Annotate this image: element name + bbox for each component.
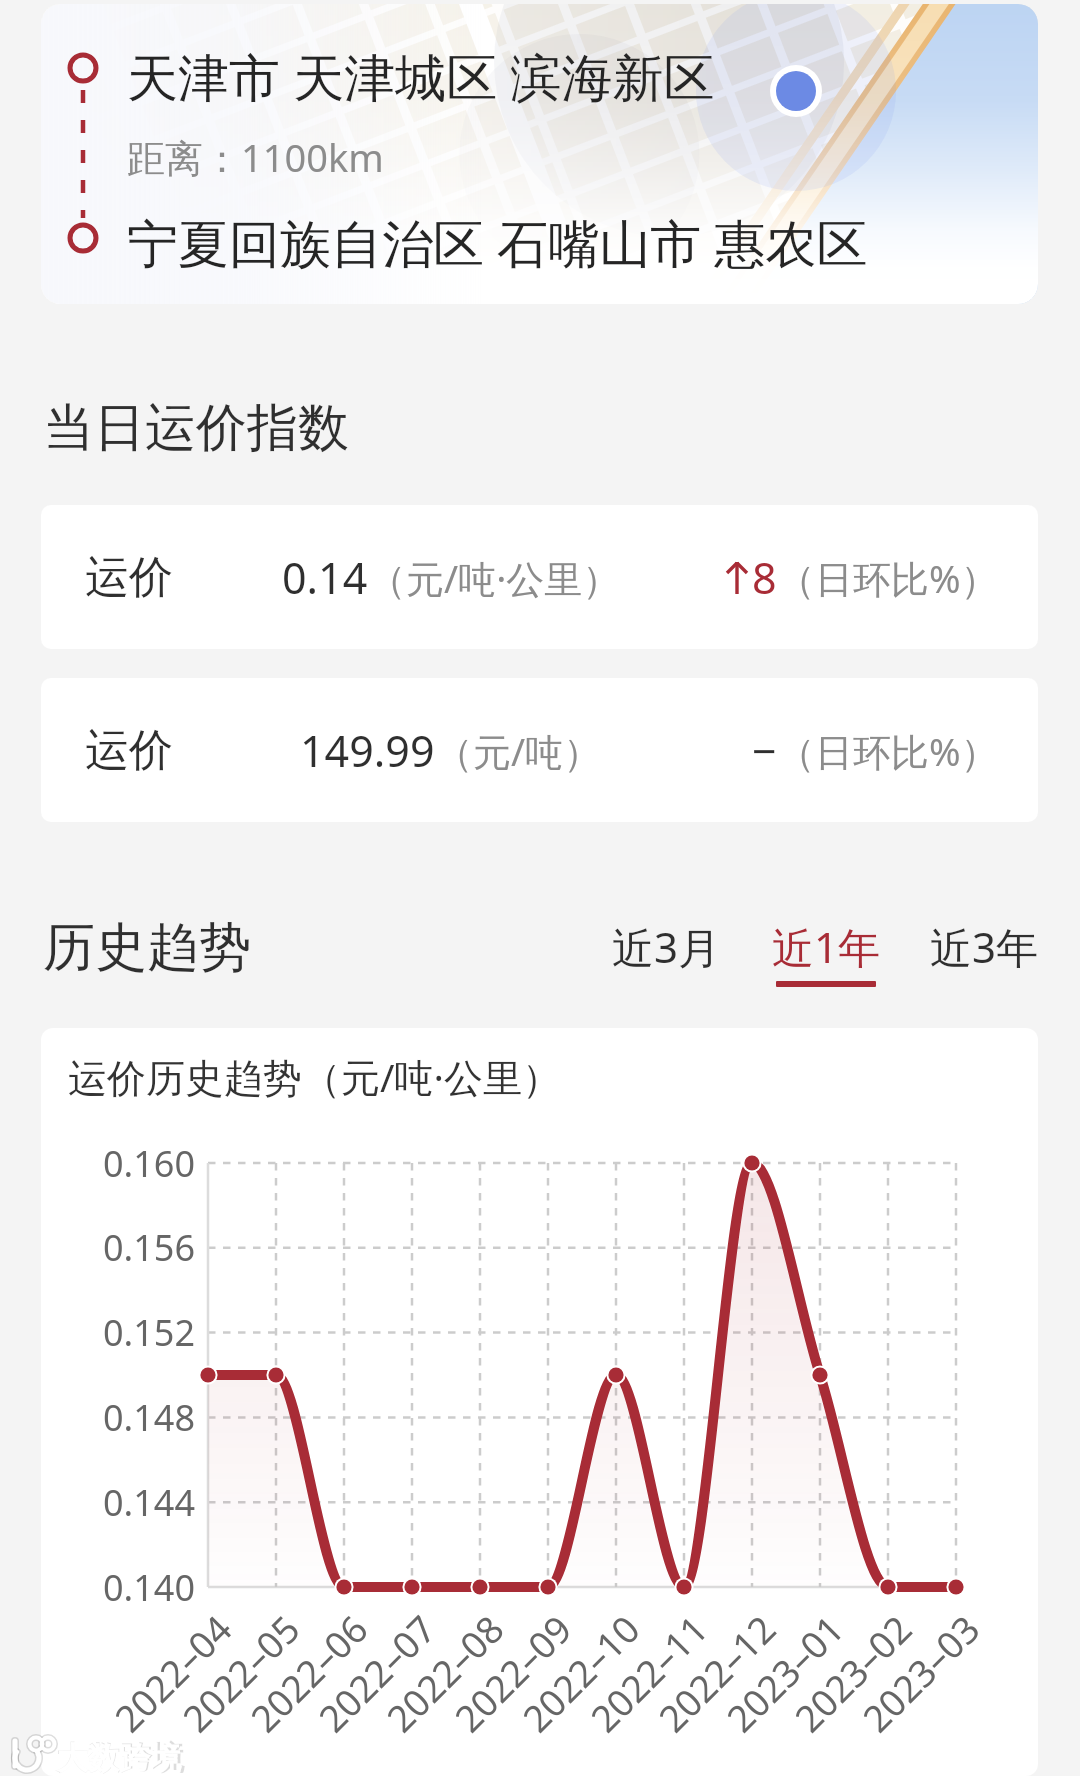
button[interactable]: 运价: [41, 505, 1038, 649]
button[interactable]: 天津市 天津城区 滨海新区: [41, 4, 1038, 304]
button[interactable]: 运价: [41, 678, 1038, 822]
staticText: （元/吨）: [435, 725, 602, 777]
staticText: 运价: [85, 550, 173, 605]
button[interactable]: 近3年: [914, 906, 1054, 992]
staticText: 大数跨境: [56, 1738, 184, 1776]
button[interactable]: 近1年: [756, 906, 896, 992]
staticText: （日环比%）: [777, 725, 999, 777]
staticText: 大数跨境: [57, 1739, 181, 1776]
staticText: 宁夏回族自治区 石嘴山市 惠农区: [127, 207, 868, 277]
staticText: 近3年: [930, 918, 1039, 975]
staticText: 当日运价指数: [43, 396, 349, 460]
staticText: 近3月: [612, 918, 721, 975]
staticText: 149.99: [300, 721, 435, 780]
staticText: −: [752, 721, 777, 780]
button[interactable]: 近3月: [596, 906, 736, 992]
staticText: （元/吨·公里）: [368, 552, 621, 604]
staticText: 距离：1100km: [127, 131, 384, 183]
staticText: 历史趋势: [43, 915, 251, 981]
staticText: （日环比%）: [777, 552, 999, 604]
staticText: 天津市 天津城区 滨海新区: [127, 41, 715, 111]
staticText: 运价: [85, 723, 173, 778]
staticText: 8: [752, 548, 777, 607]
staticText: 0.14: [282, 548, 368, 607]
staticText: 近1年: [772, 918, 881, 975]
staticText: 运价历史趋势（元/吨·公里）: [68, 1050, 561, 1103]
